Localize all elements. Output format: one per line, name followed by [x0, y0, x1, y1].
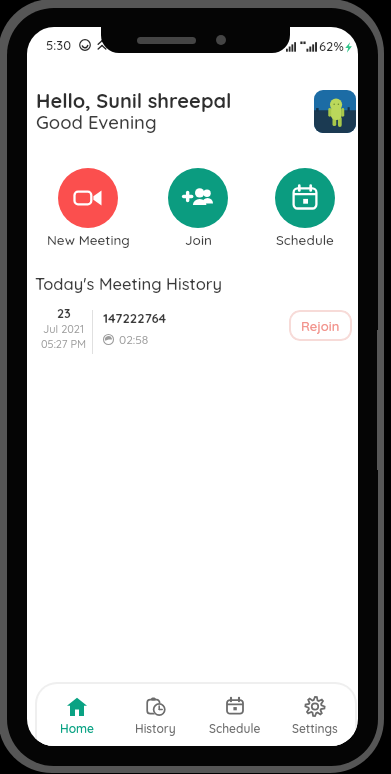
staticText: Good Evening: [36, 110, 157, 133]
button[interactable]: History: [116, 684, 195, 746]
staticText: Rejoin: [301, 318, 340, 334]
staticText: History: [135, 721, 176, 736]
staticText: Settings: [292, 721, 338, 736]
staticText: Schedule: [209, 721, 261, 736]
staticText: 62%: [319, 38, 344, 54]
staticText: New Meeting: [47, 231, 130, 248]
button[interactable]: Schedule: [195, 684, 275, 746]
staticText: 23: [57, 305, 71, 321]
button[interactable]: Join: [148, 168, 248, 248]
staticText: Join: [185, 231, 212, 248]
button[interactable]: Home: [37, 684, 116, 746]
button[interactable]: New Meeting: [38, 168, 138, 248]
staticText: Jul 2021: [43, 322, 85, 336]
staticText: Home: [60, 721, 94, 736]
staticText: Today's Meeting History: [35, 273, 223, 294]
button[interactable]: Profile: [314, 90, 356, 133]
staticText: 02:58: [119, 332, 149, 347]
staticText: 05:27 PM: [41, 337, 87, 351]
staticText: Schedule: [276, 231, 334, 248]
button[interactable]: Schedule: [255, 168, 355, 248]
staticText: Hello, Sunil shreepal: [36, 88, 232, 113]
button[interactable]: 23: [27, 299, 358, 369]
button[interactable]: Rejoin: [289, 310, 352, 341]
button[interactable]: Settings: [275, 684, 355, 746]
staticText: 147222764: [103, 310, 167, 326]
staticText: 5:30: [46, 37, 72, 53]
